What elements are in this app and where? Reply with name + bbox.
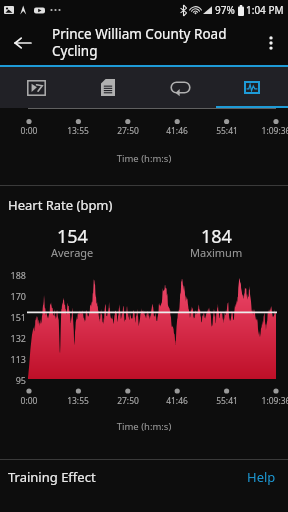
staticText: 154 (57, 224, 88, 249)
button[interactable]: Map (0, 67, 72, 108)
staticText: 0:00 (7, 395, 51, 407)
staticText: Maximum (190, 245, 243, 260)
button[interactable]: Heart rate (216, 67, 288, 108)
staticText: 97% (215, 3, 235, 17)
staticText: 55:41 (205, 395, 249, 407)
staticText: 13:55 (56, 125, 100, 137)
staticText: 113 (0, 353, 26, 365)
staticText: Help (247, 468, 276, 486)
button[interactable]: Help (243, 464, 280, 490)
staticText: 0:00 (7, 125, 51, 137)
staticText: Heart Rate (bpm) (8, 196, 113, 214)
staticText: Training Effect (8, 468, 96, 486)
button[interactable]: Navigate up (0, 20, 45, 65)
staticText: 151 (0, 311, 26, 323)
button[interactable]: Training Effect (0, 460, 288, 494)
staticText: 95 (0, 374, 26, 386)
staticText: 1:09:36 (254, 125, 288, 137)
button[interactable]: Laps (144, 67, 216, 108)
staticText: 41:46 (155, 395, 199, 407)
staticText: Prince William County Road Cycling (52, 25, 232, 60)
staticText: Time (h:m:s) (0, 152, 288, 165)
staticText: 188 (0, 269, 26, 281)
staticText: 1:09:36 (254, 395, 288, 407)
staticText: 170 (0, 290, 26, 302)
button[interactable]: More options (254, 20, 288, 65)
staticText: 132 (0, 332, 26, 344)
staticText: Average (51, 245, 94, 260)
staticText: 13:55 (56, 395, 100, 407)
staticText: Time (h:m:s) (0, 420, 288, 433)
button[interactable]: Details (72, 67, 144, 108)
staticText: 27:50 (106, 125, 150, 137)
staticText: 184 (201, 224, 232, 249)
staticText: 41:46 (155, 125, 199, 137)
staticText: 55:41 (205, 125, 249, 137)
staticText: 1:04 PM (246, 3, 284, 17)
staticText: 27:50 (106, 395, 150, 407)
